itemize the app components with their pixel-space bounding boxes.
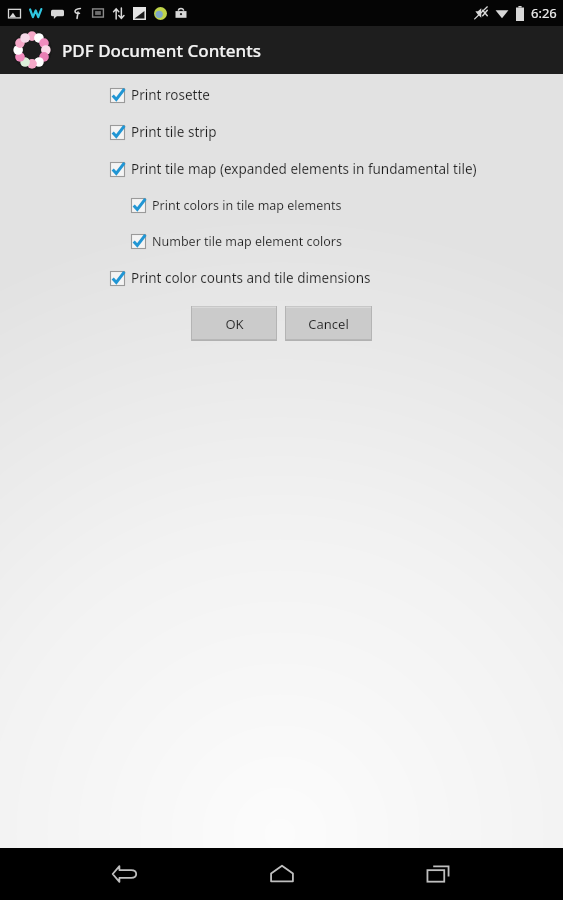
- button[interactable]: Home: [250, 848, 314, 900]
- button[interactable]: Print tile map (expanded elements in fun…: [0, 158, 563, 180]
- staticText: 6:26: [531, 4, 557, 22]
- staticText: Number tile map element colors: [152, 233, 343, 250]
- staticText: Print tile map (expanded elements in fun…: [131, 160, 477, 178]
- button[interactable]: Number tile map element colors: [0, 231, 563, 252]
- staticText: OK: [225, 315, 244, 333]
- button[interactable]: Back: [93, 848, 157, 900]
- button[interactable]: Print tile strip: [0, 121, 563, 143]
- staticText: Print color counts and tile dimensions: [131, 269, 371, 287]
- button[interactable]: Print color counts and tile dimensions: [0, 267, 563, 289]
- button[interactable]: Print colors in tile map elements: [0, 195, 563, 216]
- staticText: Print tile strip: [131, 123, 217, 141]
- staticText: PDF Document Contents: [62, 39, 262, 62]
- button[interactable]: Cancel: [285, 306, 372, 341]
- staticText: Cancel: [308, 315, 349, 333]
- button[interactable]: App icon: [10, 28, 54, 72]
- button[interactable]: Print rosette: [0, 84, 563, 106]
- staticText: Print rosette: [131, 86, 210, 104]
- button[interactable]: OK: [191, 306, 277, 341]
- button[interactable]: Recent apps: [406, 848, 470, 900]
- staticText: Print colors in tile map elements: [152, 197, 342, 214]
